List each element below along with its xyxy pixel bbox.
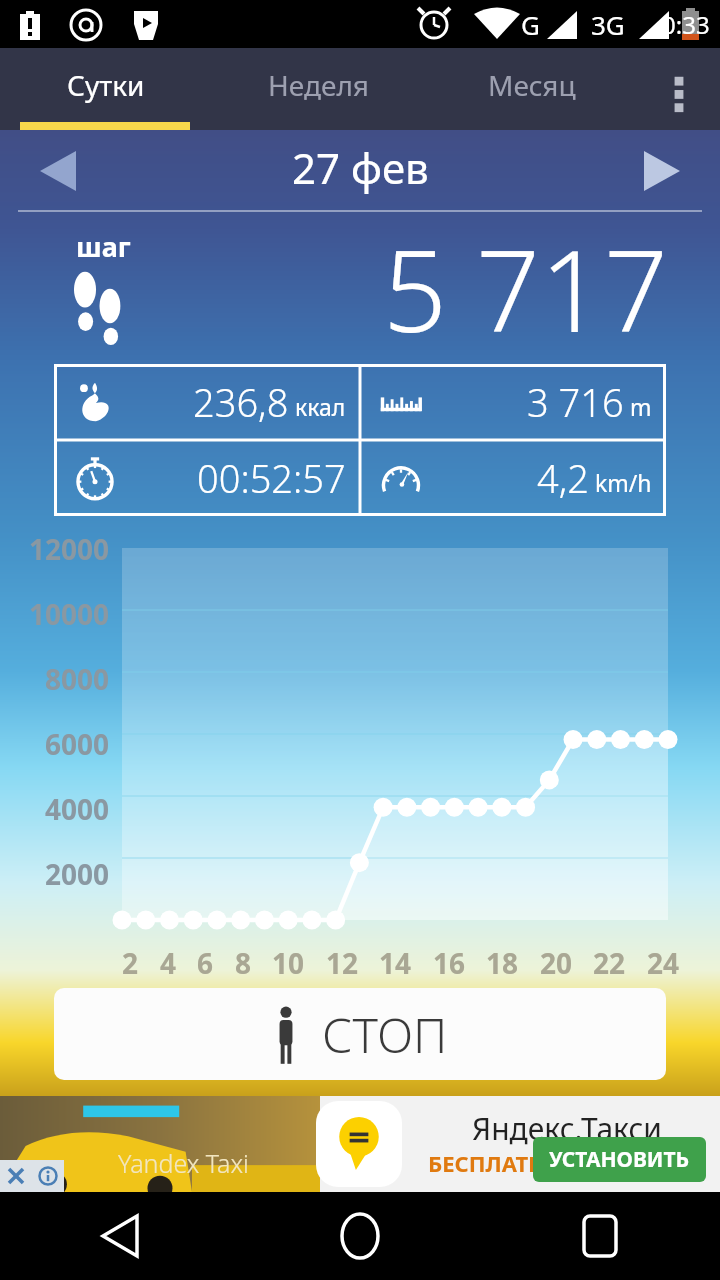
- staticText: 12: [326, 944, 359, 982]
- staticText: 18: [486, 944, 519, 982]
- staticText: 12000: [29, 530, 110, 568]
- staticText: ккал: [295, 391, 346, 422]
- staticText: 27 фев: [292, 139, 429, 196]
- button[interactable]: Previous day: [26, 139, 90, 203]
- staticText: km/h: [595, 467, 652, 498]
- staticText: 8000: [45, 660, 110, 698]
- button[interactable]: More options: [638, 48, 720, 130]
- staticText: 2: [122, 944, 139, 982]
- staticText: Yandex Taxi: [118, 1146, 249, 1180]
- button[interactable]: Next day: [630, 139, 694, 203]
- staticText: СТОП: [322, 1002, 448, 1067]
- staticText: 236,8: [193, 376, 289, 428]
- staticText: 3 716: [527, 376, 624, 428]
- button[interactable]: УСТАНОВИТЬ: [533, 1137, 706, 1182]
- staticText: 6000: [45, 725, 110, 763]
- staticText: УСТАНОВИТЬ: [549, 1145, 690, 1174]
- button[interactable]: Home: [240, 1192, 480, 1280]
- staticText: m: [630, 391, 652, 422]
- button[interactable]: Сутки: [0, 48, 212, 130]
- staticText: 4,2: [537, 452, 589, 504]
- staticText: Неделя: [268, 66, 369, 104]
- staticText: Сутки: [67, 66, 145, 104]
- button[interactable]: 3 716: [360, 364, 666, 440]
- button[interactable]: 4,2: [360, 440, 666, 516]
- staticText: 4000: [45, 790, 110, 828]
- staticText: 20: [540, 944, 573, 982]
- staticText: 24: [647, 944, 680, 982]
- staticText: 00:52:57: [197, 452, 346, 504]
- staticText: Месяц: [488, 66, 576, 104]
- staticText: 10000: [29, 595, 110, 633]
- staticText: 5 717: [383, 212, 668, 358]
- button[interactable]: Месяц: [425, 48, 638, 130]
- button[interactable]: Неделя: [212, 48, 425, 130]
- button[interactable]: Recent apps: [480, 1192, 720, 1280]
- staticText: 10: [272, 944, 305, 982]
- button[interactable]: СТОП: [54, 988, 666, 1080]
- staticText: 22: [593, 944, 626, 982]
- staticText: шаг: [76, 228, 131, 265]
- staticText: 16: [433, 944, 466, 982]
- staticText: 0:33: [662, 8, 710, 41]
- button[interactable]: 236,8: [54, 364, 360, 440]
- staticText: 2000: [45, 855, 110, 893]
- staticText: Яндекс.Такси: [472, 1108, 662, 1149]
- staticText: 4: [160, 944, 177, 982]
- button[interactable]: Close ad: [0, 1160, 32, 1192]
- button[interactable]: Back: [0, 1192, 240, 1280]
- staticText: 6: [197, 944, 214, 982]
- button[interactable]: 00:52:57: [54, 440, 360, 516]
- staticText: G: [521, 7, 540, 42]
- staticText: БЕСПЛАТНО: [428, 1148, 563, 1178]
- staticText: 14: [379, 944, 412, 982]
- staticText: 8: [235, 944, 252, 982]
- staticText: 3G: [591, 7, 625, 42]
- button[interactable]: Ad info: [32, 1160, 64, 1192]
